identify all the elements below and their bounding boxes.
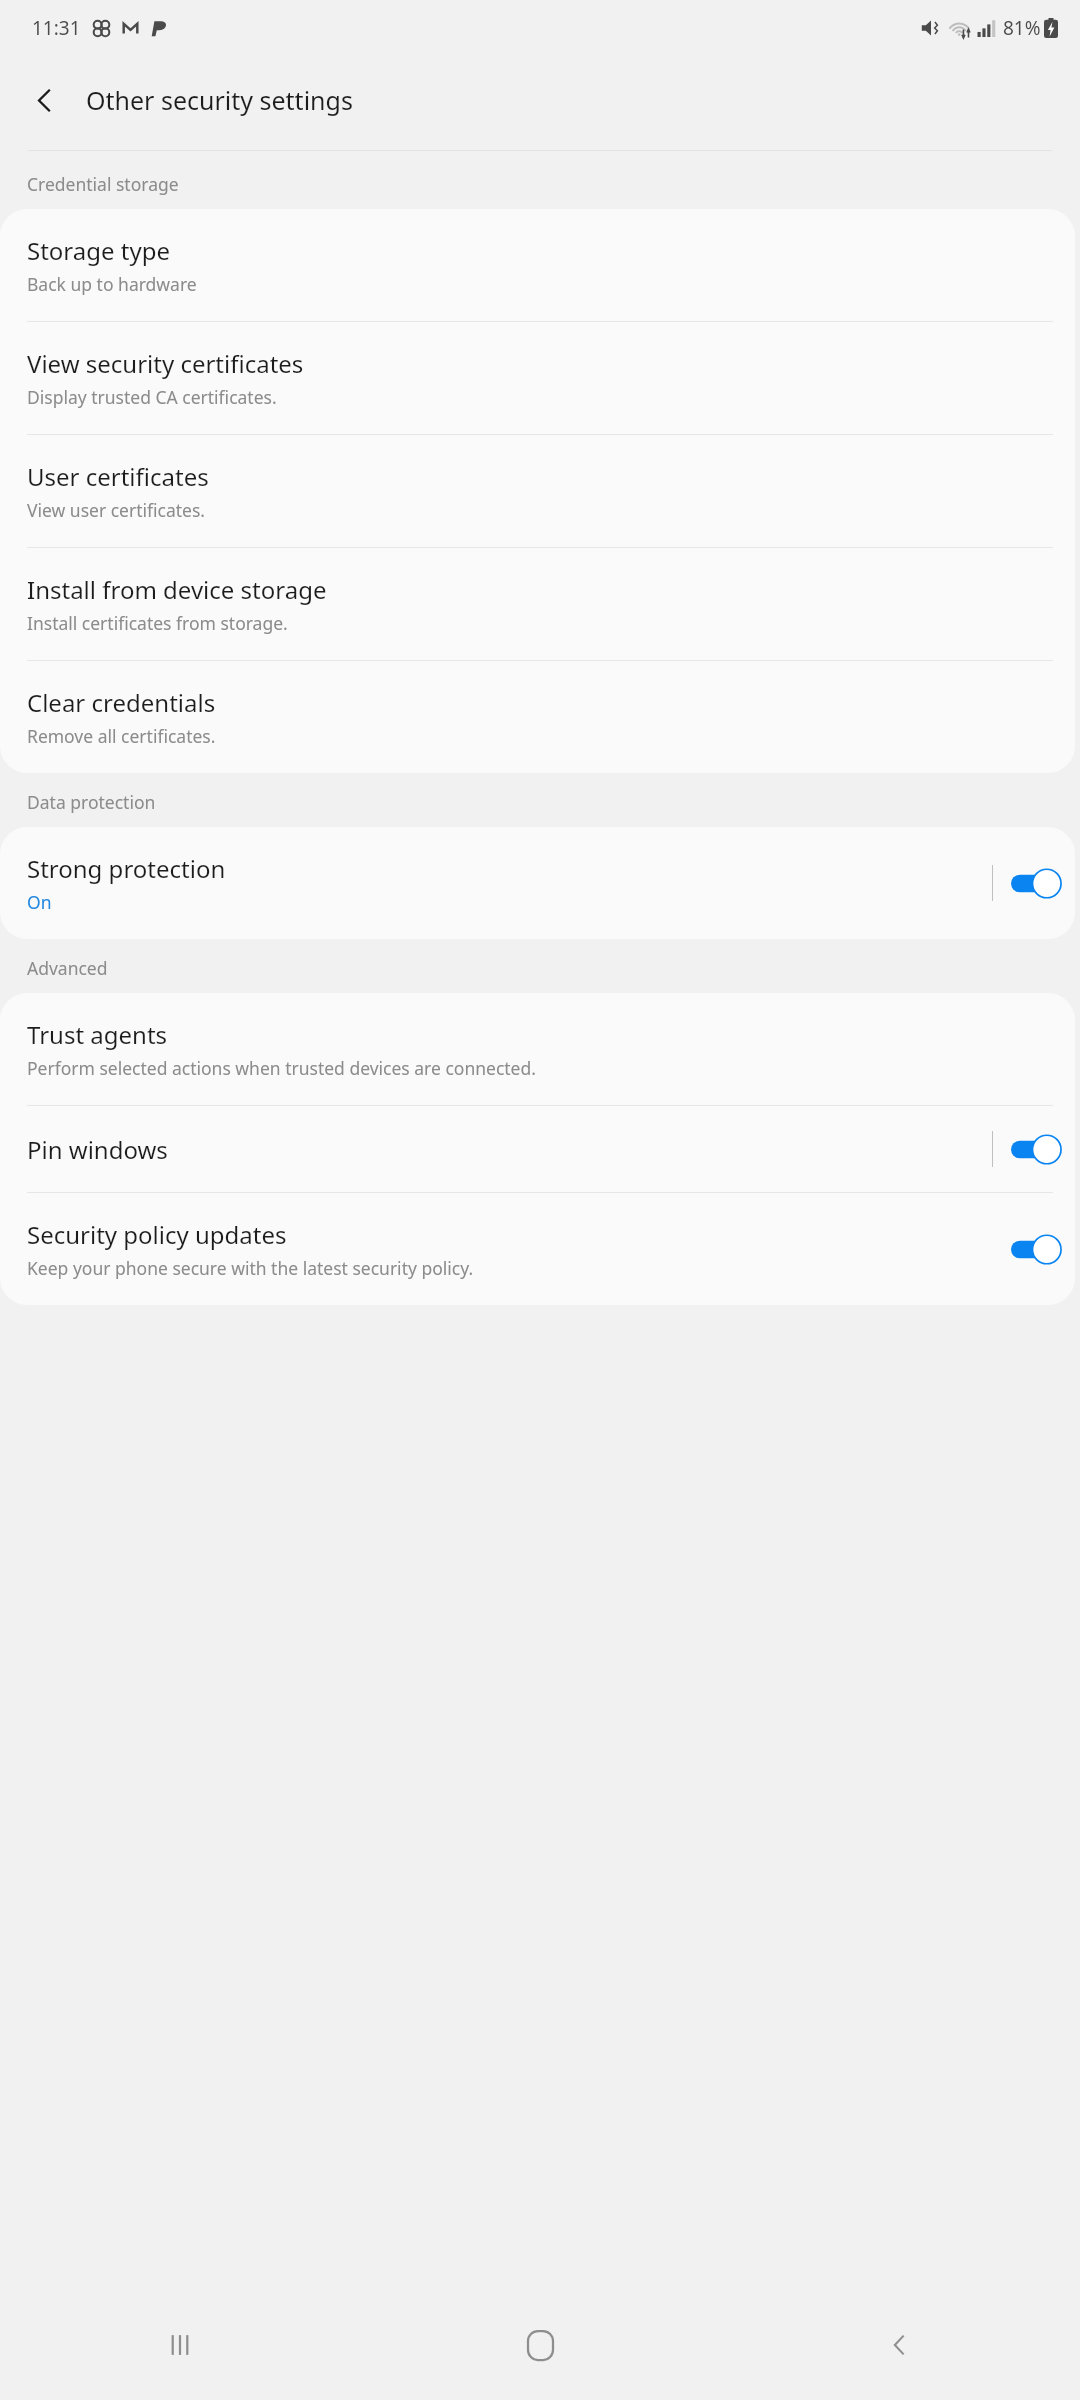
- button[interactable]: Strong protection: [0, 827, 1075, 939]
- staticText: User certificates: [27, 460, 209, 493]
- button[interactable]: Home: [360, 2290, 720, 2400]
- button[interactable]: View security certificates: [0, 322, 1075, 434]
- staticText: View security certificates: [27, 347, 304, 380]
- button[interactable]: Trust agents: [0, 993, 1075, 1105]
- staticText: Data protection: [27, 790, 156, 814]
- button[interactable]: User certificates: [0, 435, 1075, 547]
- button[interactable]: Security policy updates: [0, 1193, 1075, 1305]
- button[interactable]: Toggle on: [1011, 1134, 1059, 1165]
- staticText: Storage type: [27, 234, 170, 267]
- button[interactable]: Storage type: [0, 209, 1075, 321]
- staticText: On: [27, 890, 52, 914]
- button[interactable]: Back: [720, 2290, 1080, 2400]
- staticText: Advanced: [27, 956, 108, 980]
- button[interactable]: Back: [16, 71, 74, 129]
- staticText: Strong protection: [27, 852, 226, 885]
- staticText: Remove all certificates.: [27, 724, 216, 748]
- staticText: Pin windows: [27, 1133, 168, 1166]
- staticText: 81%: [1003, 15, 1041, 41]
- button[interactable]: Toggle on: [1011, 1234, 1059, 1265]
- staticText: Display trusted CA certificates.: [27, 385, 277, 409]
- staticText: Back up to hardware: [27, 272, 197, 296]
- button[interactable]: Toggle on: [1011, 868, 1059, 899]
- staticText: 11:31: [32, 15, 81, 41]
- staticText: Install from device storage: [27, 573, 327, 606]
- staticText: Keep your phone secure with the latest s…: [27, 1256, 474, 1280]
- button[interactable]: Clear credentials: [0, 661, 1075, 773]
- staticText: Security policy updates: [27, 1218, 287, 1251]
- staticText: View user certificates.: [27, 498, 206, 522]
- staticText: Other security settings: [86, 83, 353, 117]
- staticText: Install certificates from storage.: [27, 611, 288, 635]
- staticText: Perform selected actions when trusted de…: [27, 1056, 536, 1080]
- staticText: Clear credentials: [27, 686, 216, 719]
- button[interactable]: Recent apps: [0, 2290, 360, 2400]
- staticText: Credential storage: [27, 172, 179, 196]
- button[interactable]: Install from device storage: [0, 548, 1075, 660]
- staticText: Trust agents: [27, 1018, 168, 1051]
- button[interactable]: Pin windows: [0, 1106, 1075, 1192]
